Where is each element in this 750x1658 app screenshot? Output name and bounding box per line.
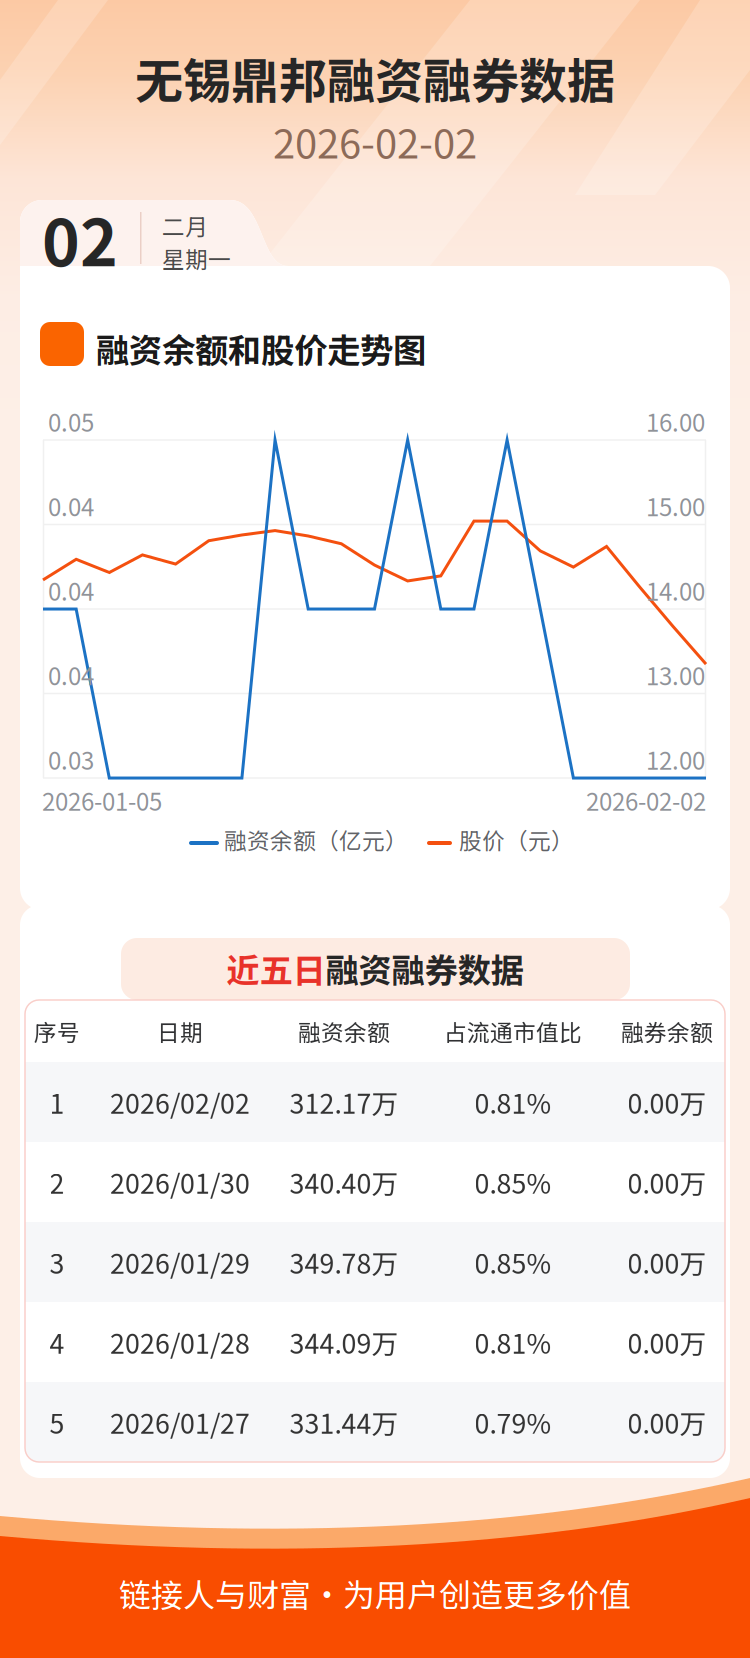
staticText: 股价（元） <box>459 823 574 856</box>
staticText: 0.00万 <box>627 1083 706 1121</box>
staticText: 融资融券数据 <box>325 944 523 992</box>
staticText: 2026/02/02 <box>110 1083 250 1121</box>
staticText: 12.00 <box>646 742 705 777</box>
staticText: 312.17万 <box>289 1083 398 1121</box>
staticText: 16.00 <box>646 404 705 439</box>
staticText: 1 <box>49 1083 64 1121</box>
staticText: 0.04 <box>48 573 94 608</box>
staticText: 近五日 <box>226 944 325 992</box>
staticText: 2026/01/28 <box>110 1323 250 1361</box>
staticText: 344.09万 <box>289 1323 398 1361</box>
staticText: 0.00万 <box>627 1243 706 1281</box>
staticText: 融券余额 <box>621 1015 713 1047</box>
staticText: 3 <box>49 1243 64 1281</box>
staticText: 4 <box>49 1323 64 1361</box>
staticText: 日期 <box>157 1015 203 1047</box>
staticText: 2026/01/30 <box>110 1163 250 1201</box>
staticText: 0.85% <box>474 1243 551 1281</box>
staticText: 340.40万 <box>289 1163 398 1201</box>
staticText: 融资余额和股价走势图 <box>96 324 426 372</box>
staticText: 占流通市值比 <box>444 1015 582 1047</box>
staticText: 0.03 <box>48 742 94 777</box>
staticText: 序号 <box>34 1015 80 1047</box>
staticText: 5 <box>49 1403 64 1441</box>
staticText: 2 <box>49 1163 64 1201</box>
staticText: 15.00 <box>646 488 705 523</box>
staticText: 0.04 <box>48 657 94 692</box>
staticText: 0.04 <box>48 488 94 523</box>
staticText: 链接人与财富·为用户创造更多价值 <box>119 1570 631 1616</box>
staticText: 0.05 <box>48 404 94 439</box>
staticText: 二月 <box>162 209 208 242</box>
staticText: 2026-02-02 <box>586 783 706 818</box>
staticText: 02 <box>42 192 118 285</box>
staticText: 星期一 <box>162 242 231 275</box>
staticText: 2026/01/27 <box>110 1403 250 1441</box>
staticText: 0.00万 <box>627 1323 706 1361</box>
staticText: 331.44万 <box>289 1403 398 1441</box>
staticText: 融资余额（亿元） <box>224 823 408 856</box>
staticText: 0.00万 <box>627 1163 706 1201</box>
staticText: 2026-02-02 <box>273 112 477 170</box>
staticText: 2026/01/29 <box>110 1243 250 1281</box>
staticText: 0.81% <box>474 1323 551 1361</box>
staticText: 融资余额 <box>298 1015 390 1047</box>
staticText: 349.78万 <box>289 1243 398 1281</box>
staticText: 2026-01-05 <box>42 783 162 818</box>
staticText: 0.00万 <box>627 1403 706 1441</box>
staticText: 13.00 <box>646 657 705 692</box>
staticText: 0.79% <box>474 1403 551 1441</box>
staticText: 14.00 <box>646 573 705 608</box>
staticText: 无锡鼎邦融资融券数据 <box>135 43 615 112</box>
staticText: 0.85% <box>474 1163 551 1201</box>
staticText: 0.81% <box>474 1083 551 1121</box>
